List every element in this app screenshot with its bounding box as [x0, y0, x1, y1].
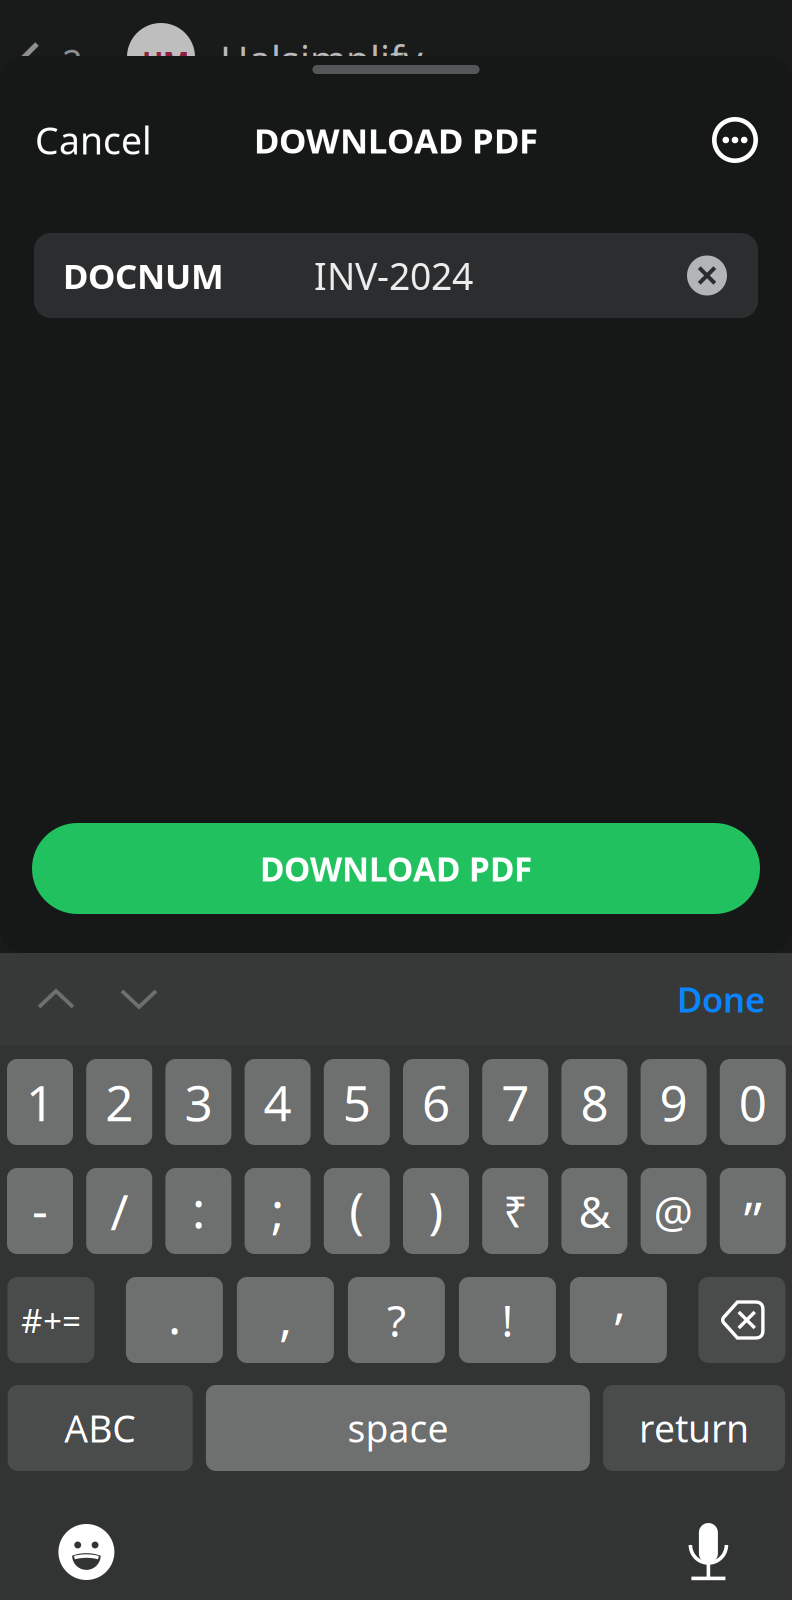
- staticText: 7: [501, 1069, 529, 1135]
- button[interactable]: .: [126, 1277, 223, 1363]
- button[interactable]: ’: [570, 1277, 667, 1363]
- button[interactable]: &: [561, 1168, 627, 1254]
- button[interactable]: Previous field: [0, 953, 75, 1045]
- button[interactable]: -: [7, 1168, 73, 1254]
- button[interactable]: ₹: [482, 1168, 548, 1254]
- staticText: 8: [580, 1069, 608, 1135]
- staticText: ABC: [64, 1403, 136, 1453]
- staticText: Done: [677, 976, 765, 1022]
- staticText: 4: [264, 1069, 292, 1135]
- staticText: ,: [279, 1284, 292, 1350]
- button[interactable]: DOWNLOAD PDF: [32, 823, 760, 914]
- button[interactable]: 6: [403, 1059, 469, 1145]
- button[interactable]: !: [459, 1277, 556, 1363]
- button[interactable]: 4: [245, 1059, 311, 1145]
- button[interactable]: ?: [348, 1277, 445, 1363]
- staticText: ”: [744, 1186, 762, 1254]
- button[interactable]: 3: [165, 1059, 231, 1145]
- staticText: ?: [387, 1291, 406, 1349]
- staticText: DOCNUM: [63, 252, 224, 298]
- button[interactable]: (: [324, 1168, 390, 1254]
- staticText: :: [192, 1176, 205, 1242]
- button[interactable]: 8: [561, 1059, 627, 1145]
- staticText: DOWNLOAD PDF: [260, 846, 532, 891]
- staticText: 2: [105, 1069, 133, 1135]
- staticText: DOWNLOAD PDF: [254, 117, 538, 163]
- staticText: space: [347, 1403, 448, 1453]
- staticText: 1: [26, 1069, 54, 1135]
- button[interactable]: /: [86, 1168, 152, 1254]
- button[interactable]: :: [165, 1168, 231, 1254]
- button[interactable]: return: [603, 1385, 785, 1471]
- button[interactable]: More options: [712, 117, 758, 163]
- button[interactable]: Cancel: [35, 115, 152, 165]
- staticText: 3: [184, 1069, 212, 1135]
- button[interactable]: Dictation: [686, 1523, 792, 1581]
- button[interactable]: Done: [677, 953, 792, 1045]
- button[interactable]: 9: [641, 1059, 707, 1145]
- staticText: 5: [343, 1069, 371, 1135]
- button[interactable]: ;: [245, 1168, 311, 1254]
- staticText: Cancel: [35, 115, 152, 165]
- staticText: 6: [422, 1069, 450, 1135]
- button[interactable]: ”: [720, 1168, 786, 1254]
- button[interactable]: space: [206, 1385, 590, 1471]
- staticText: !: [501, 1291, 513, 1349]
- button[interactable]: 0: [720, 1059, 786, 1145]
- staticText: ;: [271, 1177, 284, 1243]
- staticText: Halsimplify: [220, 33, 423, 84]
- staticText: #+=: [21, 1298, 81, 1342]
- staticText: -: [32, 1176, 48, 1242]
- staticText: 2: [62, 38, 83, 86]
- staticText: .: [168, 1282, 181, 1348]
- staticText: ): [428, 1176, 443, 1242]
- button[interactable]: Emoji keyboard: [0, 1524, 114, 1580]
- button[interactable]: 7: [482, 1059, 548, 1145]
- staticText: ₹: [503, 1183, 527, 1239]
- staticText: HM: [142, 43, 189, 80]
- button[interactable]: 2: [86, 1059, 152, 1145]
- button[interactable]: #+=: [7, 1277, 94, 1363]
- staticText: /: [110, 1178, 128, 1244]
- button[interactable]: @: [641, 1168, 707, 1254]
- staticText: 0: [739, 1069, 767, 1135]
- staticText: 9: [660, 1069, 688, 1135]
- button[interactable]: Clear text: [687, 255, 758, 295]
- button[interactable]: 5: [324, 1059, 390, 1145]
- staticText: @: [654, 1182, 694, 1240]
- staticText: ’: [614, 1297, 622, 1361]
- button[interactable]: Next field: [75, 953, 158, 1045]
- button[interactable]: ): [403, 1168, 469, 1254]
- button[interactable]: ABC: [8, 1385, 193, 1471]
- staticText: INV-2024: [314, 251, 473, 300]
- staticText: &: [578, 1182, 610, 1240]
- button[interactable]: ,: [237, 1277, 334, 1363]
- staticText: (: [349, 1176, 364, 1242]
- staticText: return: [639, 1403, 749, 1453]
- button[interactable]: Delete: [698, 1277, 785, 1363]
- button[interactable]: 1: [7, 1059, 73, 1145]
